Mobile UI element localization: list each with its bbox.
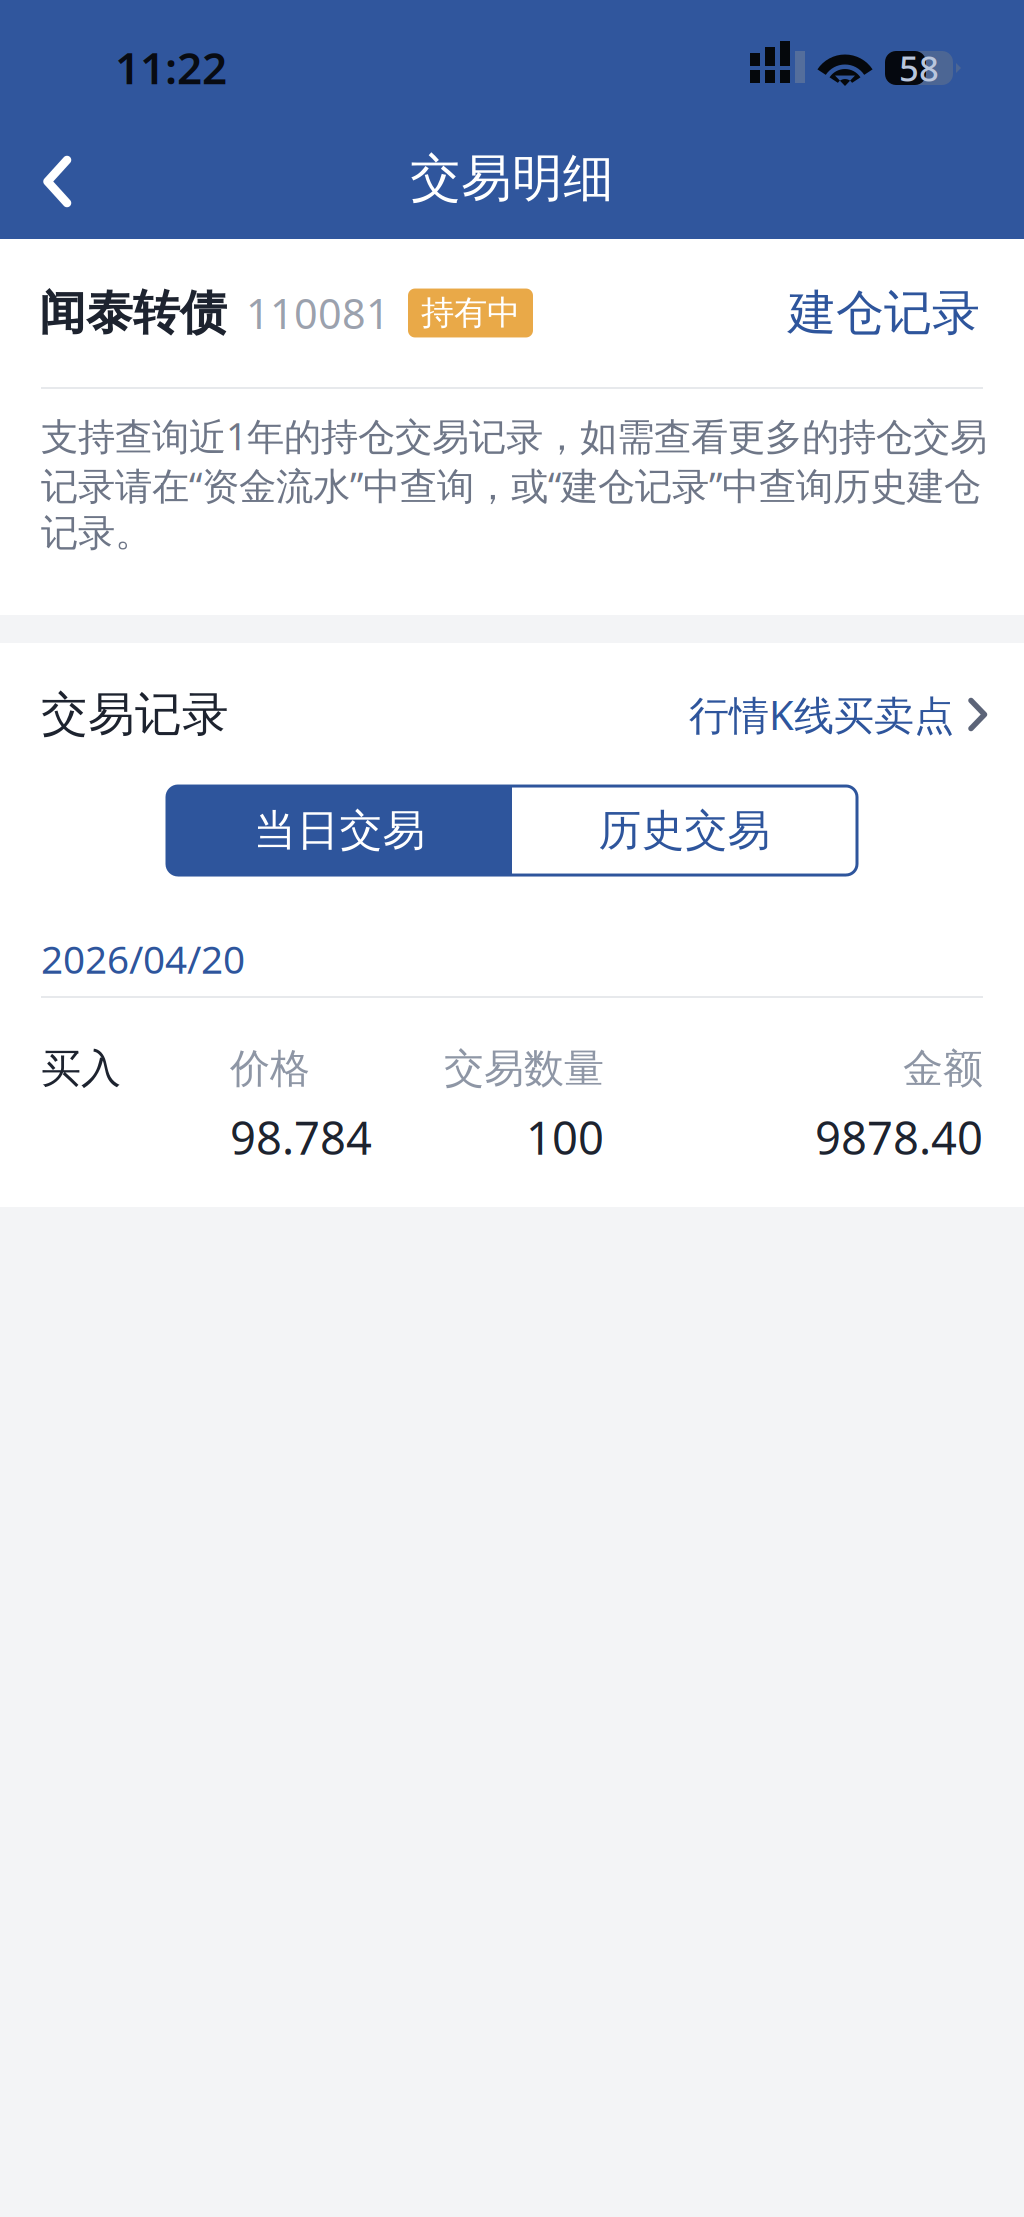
staticText: 闻泰转债 [39, 284, 227, 342]
staticText: 金额 [903, 1044, 983, 1093]
staticText: 支持查询近1年的持仓交易记录，如需查看更多的持仓交易记录请在“资金流水”中查询，… [41, 411, 987, 556]
button[interactable]: 行情K线买卖点 [689, 688, 988, 741]
staticText: 持有中 [421, 292, 520, 333]
button[interactable]: 当日交易 [167, 786, 512, 875]
staticText: 100 [526, 1107, 604, 1167]
staticText: 价格 [230, 1044, 310, 1093]
staticText: 98.784 [230, 1107, 372, 1167]
staticText: 2026/04/20 [41, 933, 245, 984]
button[interactable]: Back [0, 120, 86, 219]
staticText: 11:22 [115, 38, 227, 96]
staticText: 58 [899, 45, 939, 91]
staticText: 行情K线买卖点 [689, 688, 954, 741]
staticText: 交易数量 [444, 1044, 604, 1093]
button[interactable]: 历史交易 [512, 786, 857, 875]
staticText: 交易记录 [41, 686, 229, 743]
staticText: 当日交易 [253, 804, 425, 857]
button[interactable]: 建仓记录 [788, 283, 980, 342]
staticText: 买入 [41, 1044, 121, 1093]
staticText: 交易明细 [410, 147, 614, 210]
staticText: 9878.40 [815, 1107, 983, 1167]
staticText: 110081 [246, 286, 390, 340]
staticText: 历史交易 [598, 804, 770, 857]
staticText: 建仓记录 [788, 283, 980, 342]
